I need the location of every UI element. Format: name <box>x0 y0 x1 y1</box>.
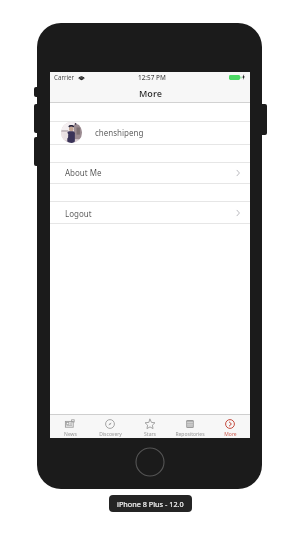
staticText: chenshipeng <box>95 127 144 138</box>
staticText: iPhone 8 Plus - 12.0 <box>117 499 184 509</box>
staticText: Logout <box>65 208 92 219</box>
staticText: News <box>64 431 77 438</box>
staticText: More <box>224 431 237 438</box>
button[interactable]: chenshipeng <box>50 121 250 144</box>
staticText: Repositories <box>175 431 205 438</box>
staticText: About Me <box>65 167 102 178</box>
button[interactable]: Stars <box>130 415 170 438</box>
staticText: Carrier <box>54 73 75 81</box>
button[interactable]: Logout <box>50 202 250 224</box>
staticText: Discovery <box>99 431 122 438</box>
button[interactable]: Repositories <box>170 415 210 438</box>
button[interactable]: Discovery <box>90 415 130 438</box>
staticText: Stars <box>144 431 156 438</box>
staticText: 12:57 PM <box>138 73 166 82</box>
button[interactable]: About Me <box>50 162 250 183</box>
button[interactable]: News <box>50 415 90 438</box>
button[interactable]: More <box>210 415 250 438</box>
staticText: More <box>139 87 162 99</box>
